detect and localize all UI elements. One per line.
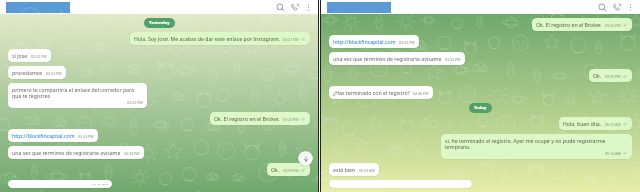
- staticText: Ok.: [271, 166, 280, 173]
- staticText: primero te compartiría el enlace del cor…: [12, 86, 143, 100]
- staticText: ¿Has terminado con el registro?: [333, 89, 410, 96]
- button[interactable]: si, he terminado el registro. Ayer me oc…: [441, 134, 632, 159]
- button[interactable]: Call: [612, 3, 621, 12]
- button[interactable]: primero te compartiría el enlace del cor…: [8, 83, 147, 108]
- staticText: 03:34 PM: [445, 57, 461, 62]
- staticText: 03:22 PM: [46, 71, 62, 76]
- staticText: 03:22 PM: [31, 54, 47, 59]
- button[interactable]: Ok. El registro en el Broker.: [532, 18, 632, 31]
- staticText: procedamos: [12, 69, 43, 76]
- staticText: si, he terminado el registro. Ayer me oc…: [445, 137, 628, 151]
- button[interactable]: Hola, buen diia.: [559, 117, 632, 130]
- staticText: 05:13 AM: [605, 122, 621, 127]
- button[interactable]: http://blockfincapital.com: [329, 35, 419, 48]
- button[interactable]: Ok.: [267, 163, 310, 176]
- staticText: una vez que termines de registrarte avis…: [12, 149, 121, 156]
- button[interactable]: ¿Has terminado con el registro?: [329, 86, 433, 99]
- staticText: 03:39 PM: [283, 168, 299, 173]
- button[interactable]: Scroll to bottom: [298, 151, 313, 166]
- staticText: Today: [474, 105, 487, 111]
- staticText: 06:03 AM: [359, 168, 375, 173]
- staticText: 04:46 PM: [92, 183, 108, 185]
- staticText: Ok. El registro en el Broker.: [536, 21, 602, 28]
- staticText: 03:25 PM: [605, 23, 621, 28]
- button[interactable]: Search: [598, 3, 607, 12]
- button[interactable]: More options: [304, 3, 313, 12]
- staticText: una vez que termines de registrarte avis…: [333, 55, 442, 62]
- staticText: Ok.: [593, 72, 602, 79]
- staticText: 03:33 PM: [78, 134, 94, 139]
- button[interactable]: http://blockfincapital.com: [8, 129, 98, 142]
- staticText: Hola, buen diia.: [563, 120, 602, 127]
- button[interactable]: Hola. Soy José. Me acabas de dar este en…: [130, 32, 310, 45]
- button[interactable]: una vez que termines de registrarte avis…: [8, 146, 144, 159]
- button[interactable]: Search: [276, 3, 285, 12]
- staticText: 03:33 PM: [399, 40, 415, 45]
- staticText: http://blockfincapital.com: [333, 38, 396, 45]
- staticText: si jose: [12, 52, 28, 59]
- staticText: Ok. El registro en el Broker.: [214, 115, 280, 122]
- button[interactable]: procedamos: [8, 66, 66, 79]
- button[interactable]: Ok. El registro en el Broker.: [210, 112, 310, 125]
- staticText: 03:25 PM: [283, 117, 299, 122]
- staticText: Yesterday: [149, 20, 170, 26]
- button[interactable]: ¿Has terminado con el registro?: [8, 180, 112, 188]
- button[interactable]: una vez que termines de registrarte avis…: [329, 52, 465, 65]
- staticText: http://blockfincapital.com: [12, 132, 75, 139]
- staticText: Hola. Soy José. Me acabas de dar este en…: [134, 35, 280, 42]
- button[interactable]: Call: [290, 3, 299, 12]
- staticText: 03:22 PM: [127, 100, 143, 105]
- button[interactable]: Contact: [6, 2, 70, 13]
- staticText: 05:14 AM: [605, 151, 621, 156]
- button[interactable]: si jose: [8, 49, 51, 62]
- staticText: 04:46 PM: [413, 91, 429, 96]
- staticText: 03:21 PM: [283, 37, 299, 42]
- staticText: está bien: [333, 166, 356, 173]
- button[interactable]: está bien: [329, 163, 379, 176]
- button[interactable]: Ok.: [589, 69, 632, 82]
- button[interactable]: Espero que verifiques tu cuenta después …: [329, 180, 472, 188]
- staticText: 03:39 PM: [605, 74, 621, 79]
- button[interactable]: More options: [626, 3, 635, 12]
- staticText: 03:34 PM: [124, 151, 140, 156]
